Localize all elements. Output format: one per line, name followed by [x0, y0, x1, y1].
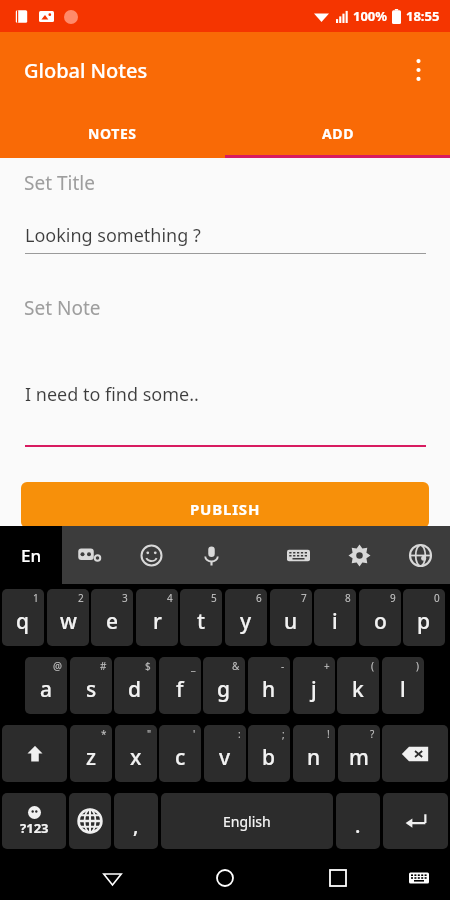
staticText: r — [153, 607, 162, 636]
staticText: Global Notes — [24, 57, 148, 84]
button[interactable]: ' — [159, 725, 201, 782]
staticText: PUBLISH — [190, 499, 261, 519]
staticText: En — [21, 544, 42, 567]
button[interactable]: 8 — [314, 589, 356, 646]
button[interactable]: Hide keyboard — [398, 856, 440, 900]
button[interactable]: Settings — [337, 526, 381, 584]
staticText: o — [374, 607, 387, 636]
button[interactable]: & — [203, 657, 245, 714]
button[interactable]: 1 — [2, 589, 44, 646]
staticText: @ — [53, 659, 62, 673]
button[interactable]: 2 — [47, 589, 89, 646]
button[interactable]: _ — [159, 657, 201, 714]
button[interactable]: 9 — [359, 589, 401, 646]
button[interactable]: 3 — [91, 589, 133, 646]
staticText: 5 — [211, 591, 217, 605]
staticText: + — [324, 659, 330, 673]
button[interactable]: Back — [90, 856, 135, 900]
staticText: y — [240, 607, 252, 636]
staticText: " — [147, 727, 152, 741]
button[interactable]: sym — [2, 793, 66, 849]
staticText: $ — [145, 659, 151, 673]
staticText: 6 — [256, 591, 262, 605]
staticText: I need to find some.. — [25, 382, 199, 407]
button[interactable]: * — [70, 725, 112, 782]
button[interactable]: ADD — [225, 108, 450, 158]
button[interactable]: Stickers — [67, 526, 111, 584]
staticText: ?123 — [20, 819, 49, 837]
button[interactable]: ; — [248, 725, 290, 782]
staticText: d — [128, 675, 142, 704]
staticText: l — [400, 675, 406, 704]
button[interactable]: More options — [396, 48, 440, 92]
button[interactable]: # — [70, 657, 112, 714]
button[interactable]: " — [115, 725, 157, 782]
button[interactable]: Language — [398, 526, 442, 584]
button[interactable]: 5 — [180, 589, 222, 646]
button[interactable]: @ — [25, 657, 67, 714]
staticText: ? — [370, 727, 375, 741]
button[interactable]: Home — [202, 856, 247, 900]
staticText: j — [311, 675, 317, 704]
button[interactable]: , — [114, 793, 158, 849]
button[interactable]: + — [293, 657, 335, 714]
staticText: 0 — [434, 591, 440, 605]
button[interactable]: back — [382, 725, 448, 782]
button[interactable]: $ — [114, 657, 156, 714]
button[interactable]: : — [204, 725, 246, 782]
button[interactable]: - — [248, 657, 290, 714]
staticText: Looking something ? — [25, 223, 201, 248]
staticText: z — [86, 743, 97, 772]
staticText: p — [417, 607, 431, 636]
button[interactable]: ( — [337, 657, 379, 714]
button[interactable]: ) — [382, 657, 424, 714]
staticText: 2 — [78, 591, 84, 605]
button[interactable]: Keyboard layout — [276, 526, 320, 584]
staticText: s — [86, 675, 97, 704]
button[interactable]: Voice input — [189, 526, 233, 584]
button[interactable]: 0 — [403, 589, 445, 646]
staticText: - — [281, 659, 285, 673]
button[interactable]: En — [0, 526, 62, 584]
staticText: ( — [371, 659, 374, 673]
staticText: 7 — [301, 591, 307, 605]
staticText: . — [355, 812, 361, 839]
button[interactable]: 7 — [270, 589, 312, 646]
staticText: 9 — [390, 591, 396, 605]
staticText: m — [349, 743, 369, 772]
staticText: 1 — [33, 591, 39, 605]
staticText: b — [262, 743, 276, 772]
staticText: : — [238, 727, 241, 741]
button[interactable]: enter — [383, 793, 448, 849]
staticText: English — [223, 812, 271, 831]
staticText: i — [332, 607, 338, 636]
button[interactable]: Recent apps — [315, 856, 360, 900]
staticText: u — [284, 607, 298, 636]
button[interactable]: NOTES — [0, 108, 225, 158]
staticText: g — [217, 675, 231, 704]
staticText: e — [106, 607, 119, 636]
staticText: ADD — [322, 124, 354, 143]
button[interactable]: 4 — [136, 589, 178, 646]
staticText: * — [101, 727, 107, 741]
staticText: h — [262, 675, 276, 704]
button[interactable]: ? — [338, 725, 380, 782]
button[interactable]: Emoji — [129, 526, 173, 584]
staticText: x — [130, 743, 142, 772]
staticText: Set Title — [24, 170, 95, 196]
button[interactable]: ! — [293, 725, 335, 782]
staticText: 18:55 — [406, 7, 440, 25]
staticText: # — [100, 659, 107, 673]
staticText: _ — [191, 659, 196, 673]
button[interactable]: 6 — [225, 589, 267, 646]
button[interactable]: shift — [2, 725, 67, 782]
staticText: f — [176, 675, 184, 704]
button[interactable]: globe — [69, 793, 111, 849]
button[interactable]: English — [161, 793, 333, 849]
staticText: NOTES — [88, 124, 137, 143]
button[interactable]: . — [336, 793, 380, 849]
button[interactable]: PUBLISH — [21, 482, 429, 528]
staticText: k — [352, 675, 364, 704]
staticText: c — [175, 743, 186, 772]
staticText: ) — [416, 659, 419, 673]
